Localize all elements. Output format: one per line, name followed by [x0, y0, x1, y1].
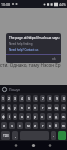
other: Google search	[2, 87, 7, 92]
staticText: 2	[8, 96, 10, 101]
button[interactable]: у	[13, 104, 17, 111]
staticText: е	[28, 105, 30, 110]
staticText: 10:08	[1, 2, 10, 7]
button[interactable]: ч	[9, 122, 15, 129]
staticText: й	[2, 105, 5, 110]
staticText: 6	[35, 96, 37, 101]
button[interactable]: Enter	[58, 131, 66, 140]
button[interactable]: о	[40, 113, 45, 120]
button[interactable]: к	[19, 104, 24, 111]
staticText: и	[34, 123, 37, 128]
button[interactable]: в	[13, 113, 17, 120]
button[interactable]: 0	[61, 95, 66, 102]
button[interactable]: л	[47, 113, 52, 120]
staticText: л	[49, 114, 51, 119]
button[interactable]: ф	[1, 113, 5, 120]
button[interactable]: ь	[47, 122, 52, 129]
staticText: у	[14, 105, 16, 110]
button[interactable]: д	[54, 113, 59, 120]
button[interactable]: я	[1, 122, 7, 129]
staticText: щ	[55, 105, 59, 110]
button[interactable]: ш	[47, 104, 52, 111]
staticText: ч	[11, 123, 13, 128]
button[interactable]: б	[54, 122, 59, 129]
staticText: ?123	[3, 134, 9, 138]
staticText: Пошук	[9, 87, 21, 92]
staticText: н	[34, 105, 37, 110]
staticText: ш	[48, 105, 52, 110]
button[interactable]: и	[33, 122, 38, 129]
staticText: ь	[49, 123, 51, 128]
staticText: п	[27, 114, 30, 119]
button[interactable]: 5	[26, 95, 31, 102]
button[interactable]: 1	[1, 95, 5, 102]
staticText: сти. Однако, таму Нэсон Ер	[0, 62, 61, 68]
staticText: я	[3, 123, 5, 128]
button[interactable]: і	[7, 113, 11, 120]
staticText: ц	[8, 105, 11, 110]
staticText: 8	[49, 96, 51, 101]
staticText: м	[27, 123, 30, 128]
button[interactable]: щ	[54, 104, 59, 111]
staticText: в	[14, 114, 16, 119]
button[interactable]: ok	[50, 56, 58, 62]
staticText: к	[21, 105, 23, 110]
button[interactable]: 9	[54, 95, 59, 102]
staticText: ok	[52, 57, 56, 61]
staticText: Need help? Contact us	[9, 48, 39, 52]
staticText: г	[42, 105, 44, 110]
button[interactable]: 8	[47, 95, 52, 102]
button[interactable]: с	[17, 122, 23, 129]
staticText: 1	[2, 96, 4, 101]
staticText: 7	[42, 96, 44, 101]
button[interactable]: 6	[33, 95, 38, 102]
staticText: б	[55, 123, 58, 128]
staticText: ю	[62, 123, 65, 128]
staticText: ф	[2, 114, 5, 119]
staticText: Need help finding	[9, 42, 33, 46]
button[interactable]: ,	[12, 131, 18, 140]
button[interactable]: т	[40, 122, 45, 129]
staticText: 44%	[59, 2, 66, 7]
button[interactable]: ю	[61, 122, 66, 129]
staticText: т	[42, 123, 44, 128]
button[interactable]: 3	[13, 95, 17, 102]
button[interactable]: ж	[61, 113, 66, 120]
staticText: с	[19, 123, 21, 128]
button[interactable]: г	[40, 104, 45, 111]
button[interactable]: р	[33, 113, 38, 120]
staticText: The page at https://m.olx.ua says:	[9, 36, 60, 40]
staticText: .	[53, 133, 54, 138]
staticText: д	[55, 114, 58, 119]
staticText: 0	[63, 96, 65, 101]
staticText: і	[9, 114, 10, 119]
staticText: 9	[56, 96, 58, 101]
staticText: ж	[62, 114, 65, 119]
button[interactable]: е	[26, 104, 31, 111]
staticText: 4	[21, 96, 23, 101]
staticText: ,	[15, 133, 16, 138]
button[interactable]: ц	[7, 104, 11, 111]
staticText: 3	[14, 96, 16, 101]
button[interactable]: а	[19, 113, 24, 120]
button[interactable]: м	[25, 122, 31, 129]
button[interactable]: н	[33, 104, 38, 111]
button[interactable]: 4	[19, 95, 24, 102]
button[interactable]: ?123	[1, 131, 10, 140]
button[interactable]: п	[26, 113, 31, 120]
button[interactable]: 2	[7, 95, 11, 102]
staticText: з	[63, 105, 65, 110]
button[interactable]: 7	[40, 95, 45, 102]
staticText: о	[41, 114, 44, 119]
button[interactable]: й	[1, 104, 5, 111]
staticText: р	[34, 114, 37, 119]
staticText: 5	[28, 96, 30, 101]
staticText: а	[21, 114, 23, 119]
button[interactable]: з	[61, 104, 66, 111]
button[interactable]: .	[51, 131, 56, 140]
